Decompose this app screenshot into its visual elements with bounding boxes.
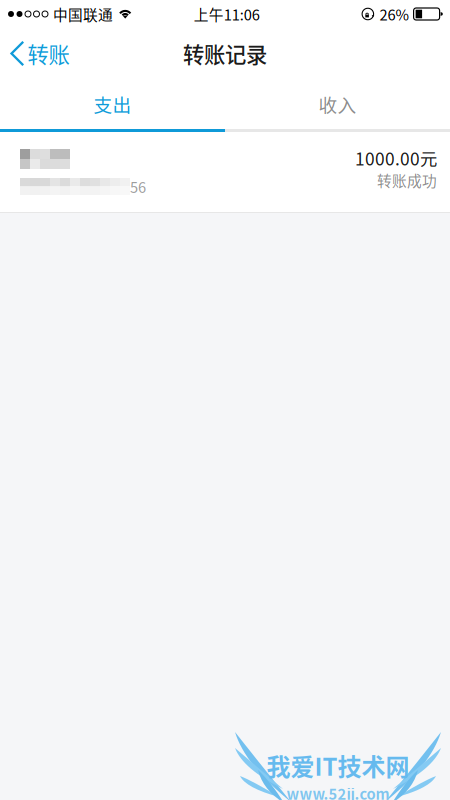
staticText: 支出 [93, 90, 131, 117]
staticText: 收入 [318, 90, 356, 117]
staticText: 转账记录 [183, 38, 267, 69]
button[interactable]: 收入 [225, 79, 450, 129]
staticText: 1000.00元 [355, 145, 437, 171]
button[interactable]: 支出 [0, 79, 225, 129]
staticText: 我爱IT技术网 [266, 748, 409, 783]
button[interactable]: 转账 [0, 29, 83, 78]
staticText: 转账成功 [377, 169, 437, 191]
staticText: 56 [130, 176, 146, 197]
staticText: 26% [380, 3, 410, 25]
staticText: 上午11:06 [194, 3, 260, 25]
staticText: 中国联通 [53, 3, 113, 25]
staticText: 转账 [27, 38, 69, 69]
staticText: www.52ij.com [286, 783, 389, 800]
button[interactable]: 56 [0, 132, 450, 212]
